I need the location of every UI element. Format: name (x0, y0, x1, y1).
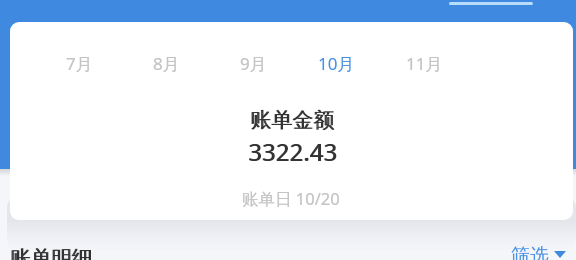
button[interactable]: 8月 (138, 48, 194, 78)
staticText: 账单日 10/20 (242, 187, 340, 210)
staticText: 账单金额 (250, 107, 334, 133)
staticText: 9月 (240, 52, 267, 75)
staticText: 账单明细 (11, 245, 93, 260)
button[interactable]: 9月 (225, 48, 281, 78)
staticText: 3322.43 (248, 136, 338, 168)
button[interactable]: 11月 (396, 48, 452, 78)
staticText: 11月 (406, 52, 443, 75)
staticText: 账单金额 (251, 107, 335, 133)
button[interactable]: 账单明细 (8, 240, 104, 260)
button[interactable]: 筛选 (505, 240, 571, 260)
staticText: 账单明细 (10, 245, 92, 260)
staticText: 8月 (153, 52, 180, 75)
staticText: 7月 (66, 52, 93, 75)
staticText: 10月 (318, 52, 355, 75)
staticText: 3322.43 (249, 136, 339, 168)
button[interactable]: 7月 (51, 48, 107, 78)
button[interactable]: Selected tab (449, 2, 533, 5)
button[interactable]: 10月 (308, 48, 364, 78)
staticText: 筛选 (511, 244, 549, 260)
